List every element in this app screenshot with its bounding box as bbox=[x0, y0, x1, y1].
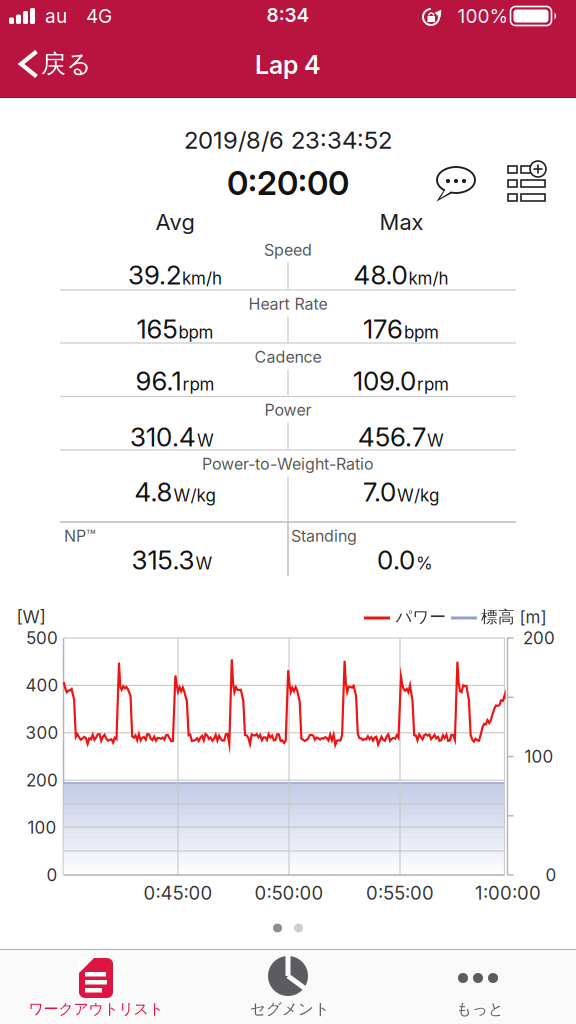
staticText: 100 bbox=[27, 817, 56, 838]
button[interactable]: セグメント bbox=[0, 0, 576, 1024]
staticText: 1:00:00 bbox=[475, 882, 541, 904]
staticText: km/h bbox=[182, 268, 222, 289]
staticText: 200 bbox=[26, 770, 58, 790]
staticText: 100 bbox=[524, 746, 553, 767]
staticText: rpm bbox=[182, 374, 214, 395]
staticText: ワークアウトリスト bbox=[28, 1000, 163, 1018]
staticText: W bbox=[195, 553, 212, 574]
staticText: W bbox=[427, 430, 444, 451]
staticText: Power bbox=[264, 400, 311, 420]
staticText: 109.0 bbox=[353, 365, 416, 397]
staticText: 2019/8/6 23:34:52 bbox=[184, 125, 392, 154]
staticText: W/kg bbox=[397, 485, 439, 506]
staticText: Speed bbox=[264, 240, 312, 260]
staticText: 0:50:00 bbox=[254, 882, 323, 904]
staticText: 176 bbox=[363, 313, 403, 345]
staticText: 4.8 bbox=[134, 476, 172, 508]
staticText: 4G bbox=[86, 4, 112, 27]
staticText: 0.0 bbox=[377, 544, 415, 576]
staticText: bpm bbox=[178, 322, 213, 343]
button[interactable]: Add to list bbox=[0, 0, 576, 1024]
button[interactable]: 戻る bbox=[0, 0, 576, 1024]
staticText: 0 bbox=[46, 865, 57, 885]
staticText: km/h bbox=[408, 268, 448, 289]
staticText: 400 bbox=[25, 675, 58, 696]
staticText: rpm bbox=[417, 374, 449, 395]
staticText: Lap 4 bbox=[255, 50, 321, 80]
staticText: 39.2 bbox=[128, 259, 181, 291]
staticText: 7.0 bbox=[363, 476, 396, 508]
staticText: % bbox=[416, 553, 433, 574]
staticText: セグメント bbox=[250, 999, 330, 1019]
staticText: 200 bbox=[523, 628, 555, 648]
staticText: W bbox=[197, 430, 214, 451]
staticText: 0 bbox=[545, 865, 556, 885]
staticText: 165 bbox=[136, 313, 177, 345]
staticText: 0:55:00 bbox=[366, 882, 434, 904]
staticText: NP™ bbox=[64, 526, 96, 546]
staticText: 96.1 bbox=[135, 365, 181, 397]
staticText: W/kg bbox=[173, 485, 215, 506]
staticText: 0:45:00 bbox=[143, 882, 212, 904]
staticText: bpm bbox=[404, 322, 439, 343]
staticText: 標高 bbox=[481, 607, 515, 627]
staticText: Standing bbox=[291, 526, 357, 546]
staticText: 456.7 bbox=[358, 421, 426, 453]
staticText: 48.0 bbox=[353, 259, 407, 291]
button[interactable]: もっと bbox=[0, 0, 576, 1024]
staticText: 戻る bbox=[41, 48, 92, 80]
staticText: au bbox=[45, 4, 67, 27]
staticText: 0:20:00 bbox=[227, 163, 349, 203]
staticText: Max bbox=[379, 209, 423, 235]
staticText: 8:34 bbox=[266, 3, 309, 26]
staticText: [W] bbox=[16, 606, 45, 628]
staticText: Heart Rate bbox=[248, 294, 327, 314]
staticText: Power-to-Weight-Ratio bbox=[202, 454, 374, 474]
staticText: パワー bbox=[395, 607, 446, 627]
staticText: Cadence bbox=[254, 347, 321, 367]
staticText: もっと bbox=[456, 999, 504, 1019]
staticText: 310.4 bbox=[130, 421, 196, 453]
staticText: 315.3 bbox=[131, 544, 194, 576]
staticText: 300 bbox=[25, 722, 58, 743]
staticText: Avg bbox=[155, 209, 194, 235]
button[interactable]: ワークアウトリスト bbox=[0, 0, 576, 1024]
button[interactable]: Comments bbox=[0, 0, 576, 1024]
staticText: 100% bbox=[457, 4, 508, 27]
staticText: 500 bbox=[26, 628, 58, 648]
staticText: [m] bbox=[519, 607, 546, 627]
